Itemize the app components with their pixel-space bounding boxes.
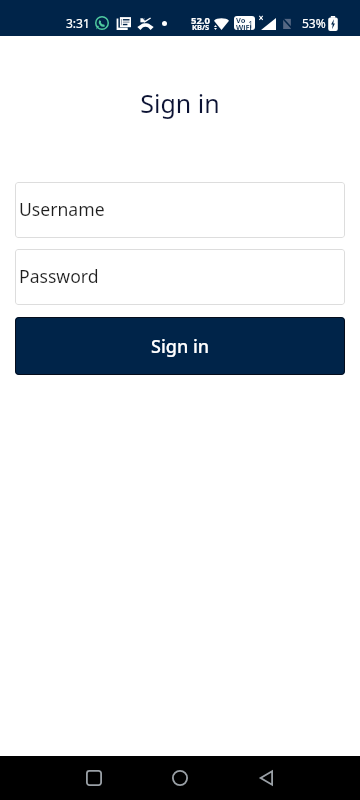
staticText: 1 [248,18,254,30]
staticText: Password [19,264,99,288]
button[interactable]: Sign in [15,317,345,375]
staticText: 53% [302,15,326,31]
staticText: KB/S [192,22,210,32]
staticText: 52.0 [191,14,210,27]
staticText: 3:31 [66,15,90,31]
button[interactable]: Home [156,756,204,800]
staticText: Vo [236,16,246,25]
staticText: Sign in [151,334,210,359]
button[interactable]: Password [15,249,345,305]
button[interactable]: Back [242,756,290,800]
staticText: Sign in [0,86,360,120]
button[interactable]: Username [15,182,345,238]
button[interactable]: Recent apps [70,756,118,800]
staticText: Username [19,197,105,221]
staticText: WiFi [236,22,252,30]
